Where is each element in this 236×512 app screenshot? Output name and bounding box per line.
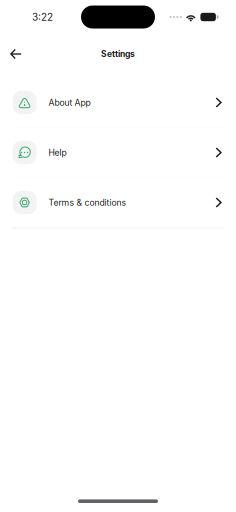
staticText: 3:22 (32, 11, 53, 23)
button[interactable]: About App (0, 77, 236, 127)
button[interactable]: Back (1, 39, 31, 69)
button[interactable]: Help (0, 127, 236, 177)
staticText: About App (48, 97, 90, 108)
button[interactable]: Terms & conditions (0, 177, 236, 227)
staticText: Terms & conditions (48, 197, 126, 208)
staticText: Help (48, 147, 66, 158)
staticText: Settings (101, 49, 135, 59)
